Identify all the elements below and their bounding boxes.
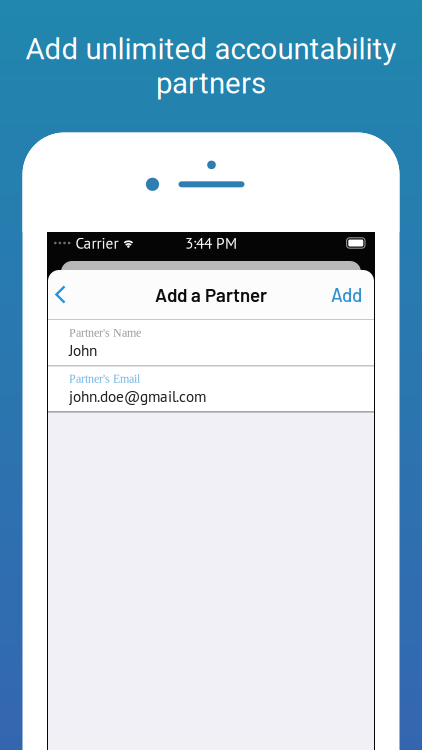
staticText: John — [69, 340, 97, 360]
staticText: Add unlimited accountability — [25, 32, 396, 66]
staticText: partners — [156, 66, 266, 101]
staticText: Carrier — [75, 233, 118, 253]
staticText: john.doe@gmail.com — [69, 386, 206, 406]
staticText: Add — [331, 283, 362, 306]
button[interactable]: Back — [48, 275, 80, 314]
staticText: Partner's Email — [69, 372, 140, 385]
button[interactable]: Add — [317, 273, 374, 316]
staticText: Add a Partner — [155, 283, 267, 306]
staticText: Partner's Name — [69, 326, 141, 339]
staticText: 3:44 PM — [185, 233, 237, 253]
